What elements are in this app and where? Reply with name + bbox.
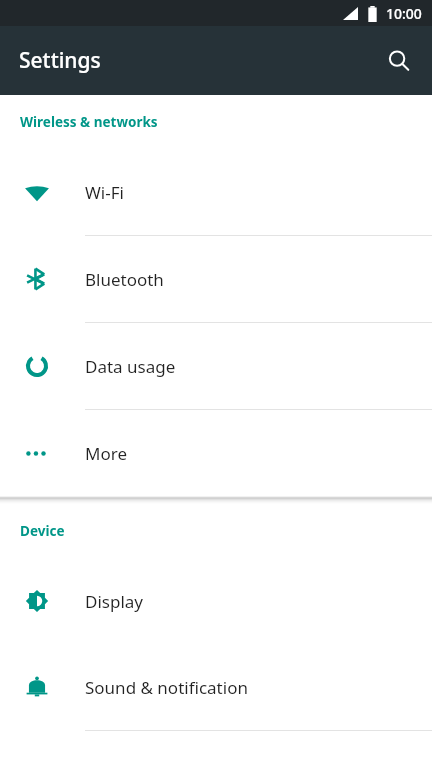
staticText: Bluetooth — [85, 268, 164, 291]
staticText: Sound & notification — [85, 676, 248, 699]
staticText: Settings — [19, 46, 101, 75]
button[interactable]: Display — [0, 558, 432, 644]
staticText: 10:00 — [386, 4, 422, 23]
staticText: Data usage — [85, 355, 176, 378]
staticText: Device — [20, 522, 65, 540]
staticText: Wireless & networks — [20, 113, 158, 131]
staticText: Wi-Fi — [85, 181, 124, 204]
button[interactable]: Search — [375, 37, 423, 85]
button[interactable]: Sound & notification — [0, 644, 432, 731]
button[interactable]: Wi-Fi — [0, 149, 432, 236]
button[interactable]: Data usage — [0, 323, 432, 410]
button[interactable]: Bluetooth — [0, 236, 432, 323]
button[interactable]: More — [0, 410, 432, 496]
staticText: More — [85, 442, 127, 465]
staticText: Display — [85, 590, 143, 613]
